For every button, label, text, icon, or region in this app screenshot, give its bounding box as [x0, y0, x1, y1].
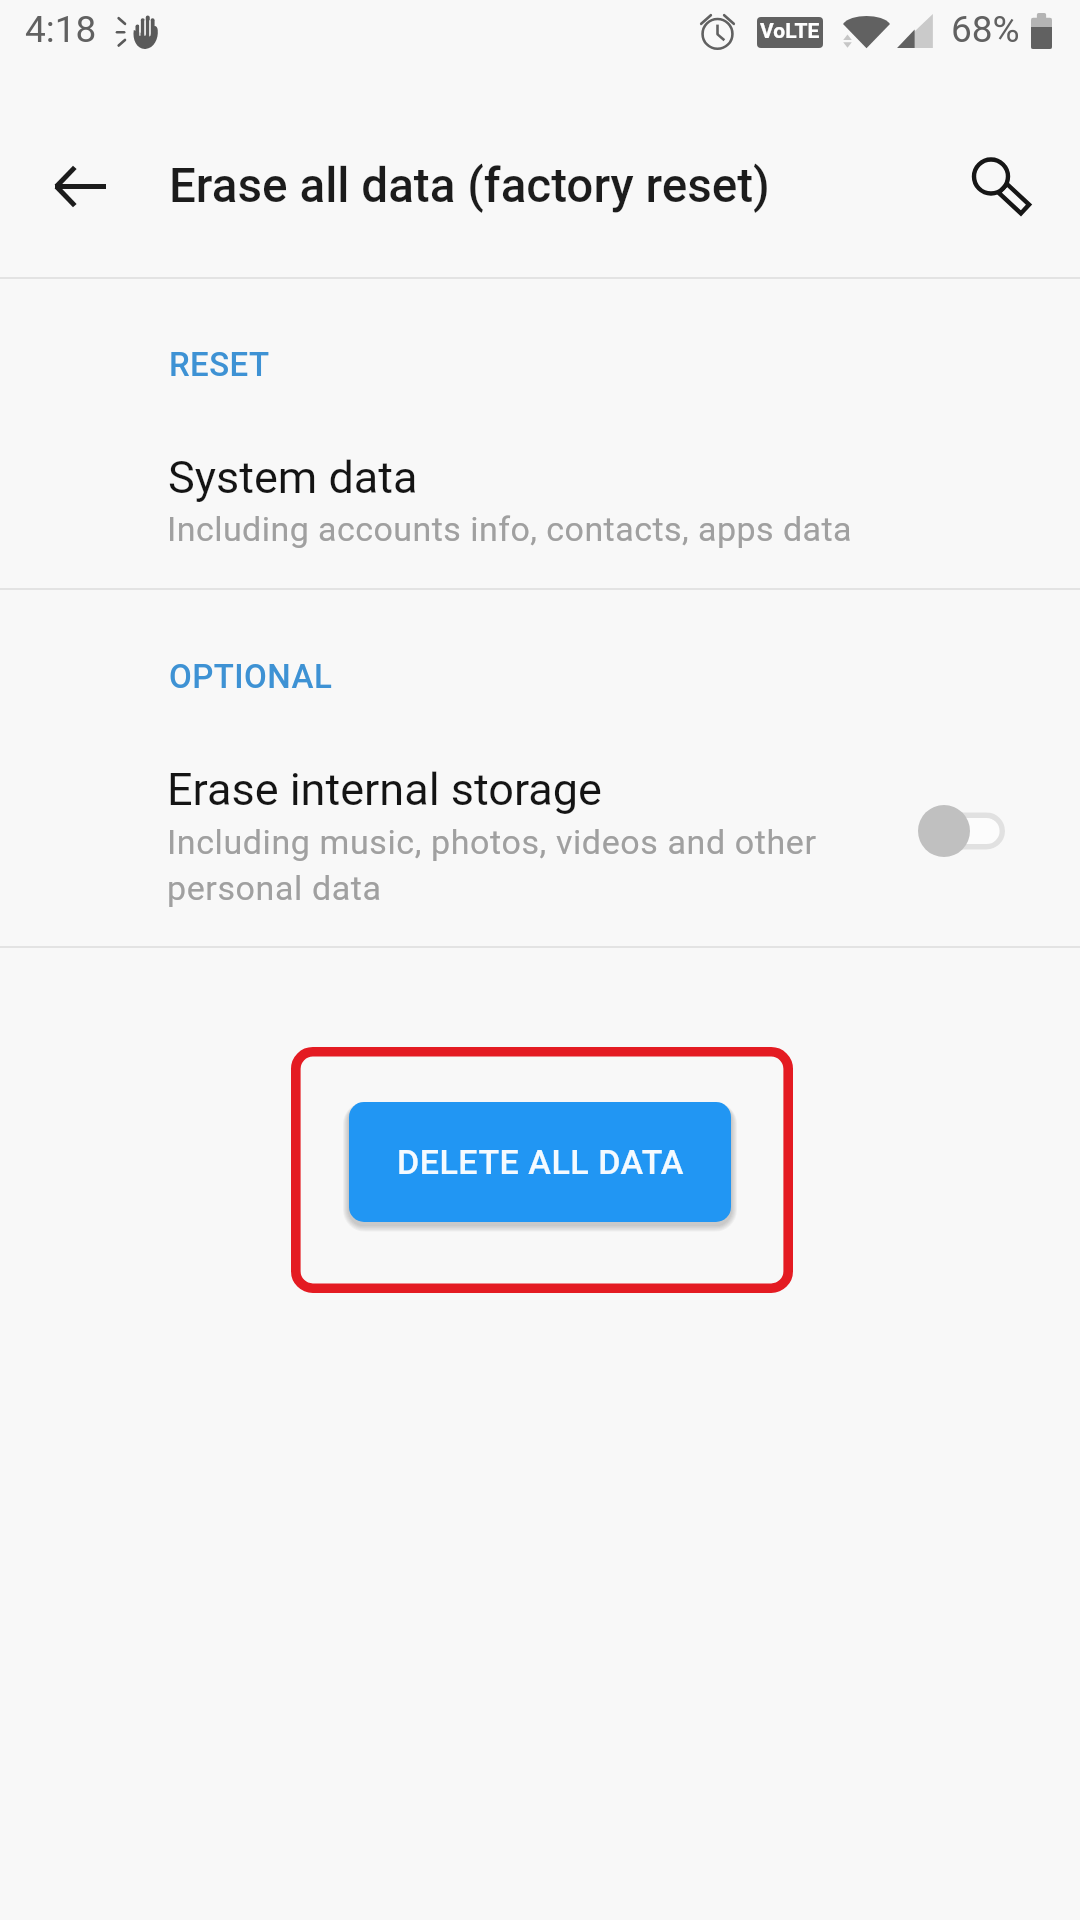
staticText: 68%	[951, 8, 1020, 51]
button[interactable]: DELETE ALL DATA	[349, 1102, 731, 1222]
staticText: Including music, photos, videos and othe…	[167, 822, 847, 908]
staticText: RESET	[169, 345, 270, 384]
staticText: Erase internal storage	[167, 763, 602, 816]
button[interactable]: Erase internal storage	[0, 735, 1080, 940]
button[interactable]: Search	[922, 114, 1066, 258]
button[interactable]: System data	[0, 423, 1080, 563]
staticText: Erase all data (factory reset)	[169, 158, 770, 214]
staticText: DELETE ALL DATA	[397, 1142, 684, 1182]
staticText: System data	[168, 451, 418, 504]
staticText: VoLTE	[760, 19, 820, 44]
staticText: Including accounts info, contacts, apps …	[167, 509, 852, 549]
button[interactable]: Erase internal storage	[880, 767, 1040, 895]
staticText: 4:18	[25, 8, 97, 51]
staticText: OPTIONAL	[169, 657, 333, 696]
button[interactable]: Back	[8, 114, 152, 258]
